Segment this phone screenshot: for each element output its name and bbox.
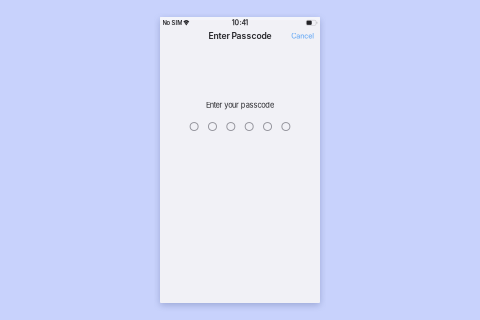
staticText: Cancel (291, 32, 314, 40)
staticText: Enter Passcode (208, 31, 271, 41)
staticText: 10:41 (232, 19, 248, 27)
button[interactable]: Passcode (190, 122, 290, 130)
button[interactable]: Cancel (285, 29, 320, 43)
staticText: Enter your passcode (206, 100, 274, 109)
staticText: No SIM (163, 19, 182, 26)
